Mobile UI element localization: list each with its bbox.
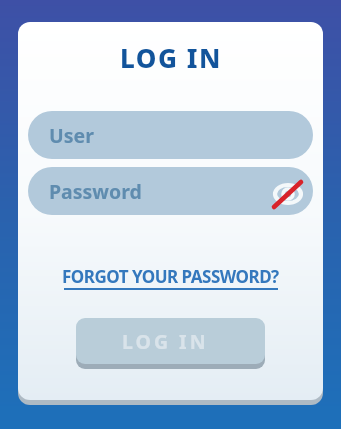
button[interactable]: LOG IN	[76, 318, 265, 364]
staticText: FORGOT YOUR PASSWORD?	[62, 265, 279, 288]
button[interactable]: User	[28, 111, 313, 159]
staticText: LOG IN	[122, 328, 209, 355]
button[interactable]: Password	[28, 167, 313, 215]
staticText: LOG IN	[120, 40, 222, 75]
button[interactable]: FORGOT YOUR PASSWORD?	[62, 265, 279, 290]
staticText: User	[49, 122, 94, 149]
button[interactable]	[270, 176, 306, 212]
staticText: Password	[49, 178, 142, 205]
